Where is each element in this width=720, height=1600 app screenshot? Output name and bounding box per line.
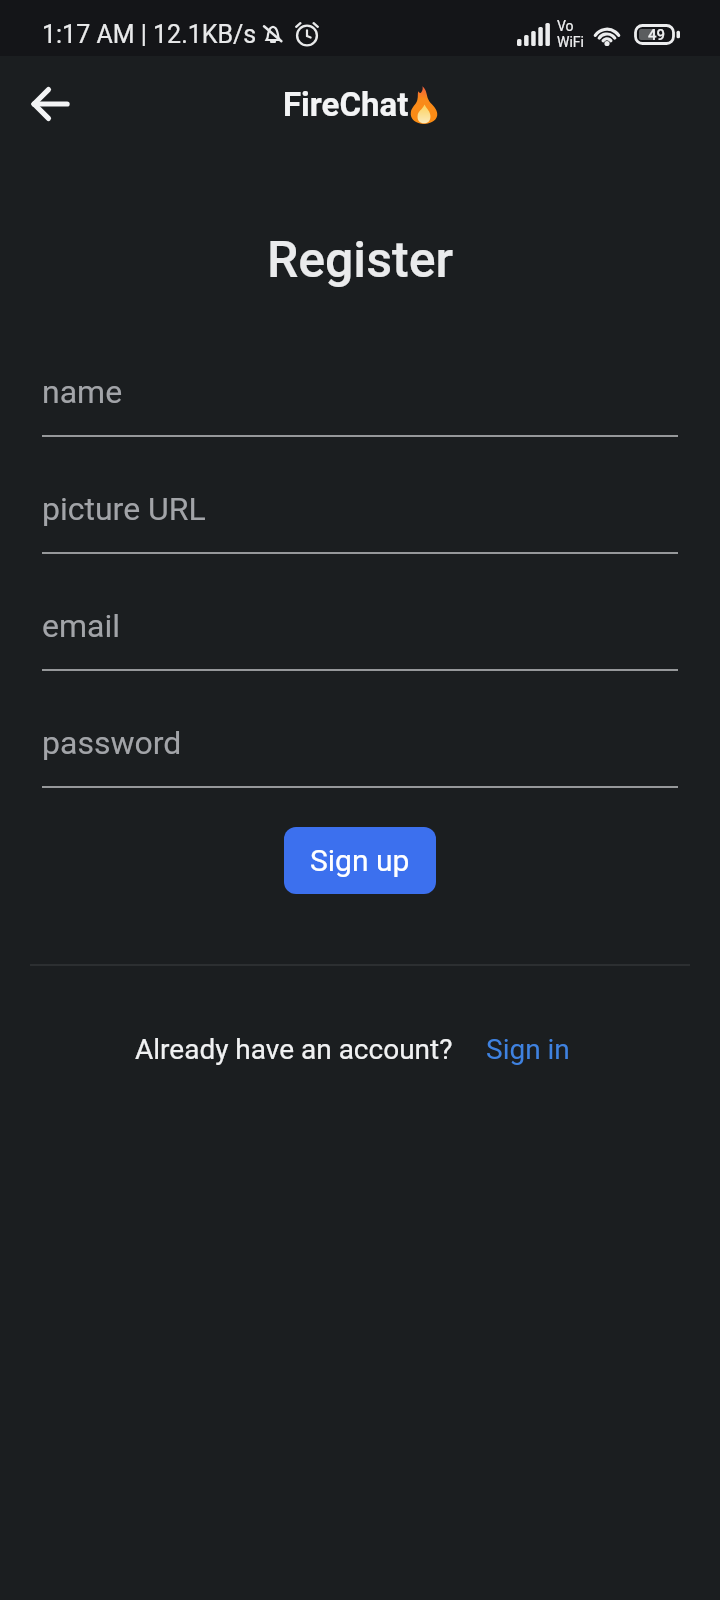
- button[interactable]: Sign in: [486, 1033, 570, 1066]
- staticText: password: [42, 724, 182, 762]
- staticText: 49: [648, 26, 666, 44]
- staticText: name: [42, 373, 123, 411]
- staticText: email: [42, 607, 120, 645]
- button[interactable]: email: [42, 607, 678, 671]
- staticText: FireChat: [283, 85, 409, 124]
- staticText: WiFi: [557, 34, 584, 50]
- button[interactable]: [22, 76, 78, 132]
- button[interactable]: name: [42, 373, 678, 437]
- staticText: Register: [0, 231, 720, 290]
- button[interactable]: picture URL: [42, 490, 678, 554]
- button[interactable]: Sign up: [284, 827, 436, 894]
- staticText: picture URL: [42, 490, 206, 528]
- staticText: Sign up: [310, 843, 410, 878]
- staticText: Already have an account?: [135, 1033, 453, 1066]
- staticText: Vo: [557, 18, 574, 34]
- staticText: 1:17 AM | 12.1KB/s: [42, 20, 257, 49]
- button[interactable]: password: [42, 724, 678, 788]
